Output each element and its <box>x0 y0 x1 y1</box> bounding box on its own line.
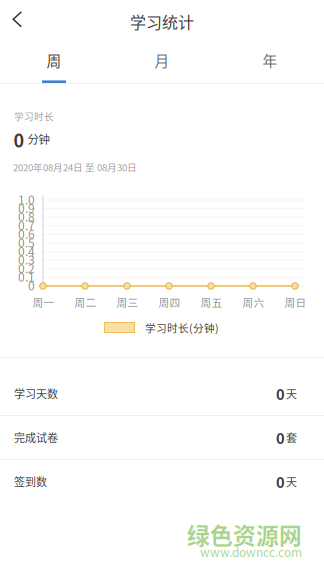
staticText: 0 <box>13 126 24 153</box>
staticText: 2020年08月24日 至 08月30日 <box>13 160 137 174</box>
staticText: www.downcc.com <box>200 543 302 560</box>
staticText: 天 <box>286 385 297 401</box>
staticText: 周四 <box>158 294 180 310</box>
staticText: 学习天数 <box>14 385 58 401</box>
staticText: 0 <box>276 427 285 448</box>
staticText: 周二 <box>74 294 96 310</box>
staticText: 月 <box>154 49 169 71</box>
staticText: 周三 <box>116 294 138 310</box>
staticText: 周 <box>46 49 61 71</box>
staticText: 0.9 <box>18 199 35 216</box>
staticText: 1.0 <box>18 190 35 208</box>
staticText: 0 <box>276 383 285 404</box>
staticText: 0 <box>276 471 285 492</box>
staticText: 周一 <box>32 294 54 310</box>
staticText: 0.4 <box>18 242 35 259</box>
staticText: 0.2 <box>18 259 35 277</box>
button[interactable]: Back <box>0 0 40 40</box>
staticText: 分钟 <box>28 130 50 147</box>
staticText: 套 <box>286 429 297 445</box>
staticText: 0.3 <box>18 251 35 268</box>
button[interactable]: 月 <box>108 42 216 78</box>
staticText: 0.7 <box>18 216 35 234</box>
staticText: 0.5 <box>18 233 35 251</box>
staticText: 年 <box>262 49 277 71</box>
staticText: 0.6 <box>18 225 35 242</box>
button[interactable]: 签到数 <box>0 460 324 504</box>
staticText: 天 <box>286 473 297 489</box>
staticText: 周日 <box>284 294 306 310</box>
button[interactable]: 学习天数 <box>0 372 324 416</box>
button[interactable]: 完成试卷 <box>0 416 324 460</box>
staticText: 绿色资源网 <box>187 518 302 551</box>
button[interactable]: 年 <box>216 42 324 78</box>
staticText: 签到数 <box>14 473 47 489</box>
staticText: 周五 <box>200 294 222 310</box>
staticText: 学习统计 <box>130 10 194 33</box>
button[interactable]: 周 <box>0 42 108 78</box>
staticText: 学习时长(分钟) <box>145 320 219 335</box>
staticText: 0 <box>28 276 35 294</box>
staticText: 学习时长 <box>14 109 54 123</box>
staticText: 0.1 <box>18 268 35 285</box>
staticText: 0.8 <box>18 208 35 225</box>
staticText: 周六 <box>242 294 264 310</box>
staticText: 完成试卷 <box>14 429 58 445</box>
